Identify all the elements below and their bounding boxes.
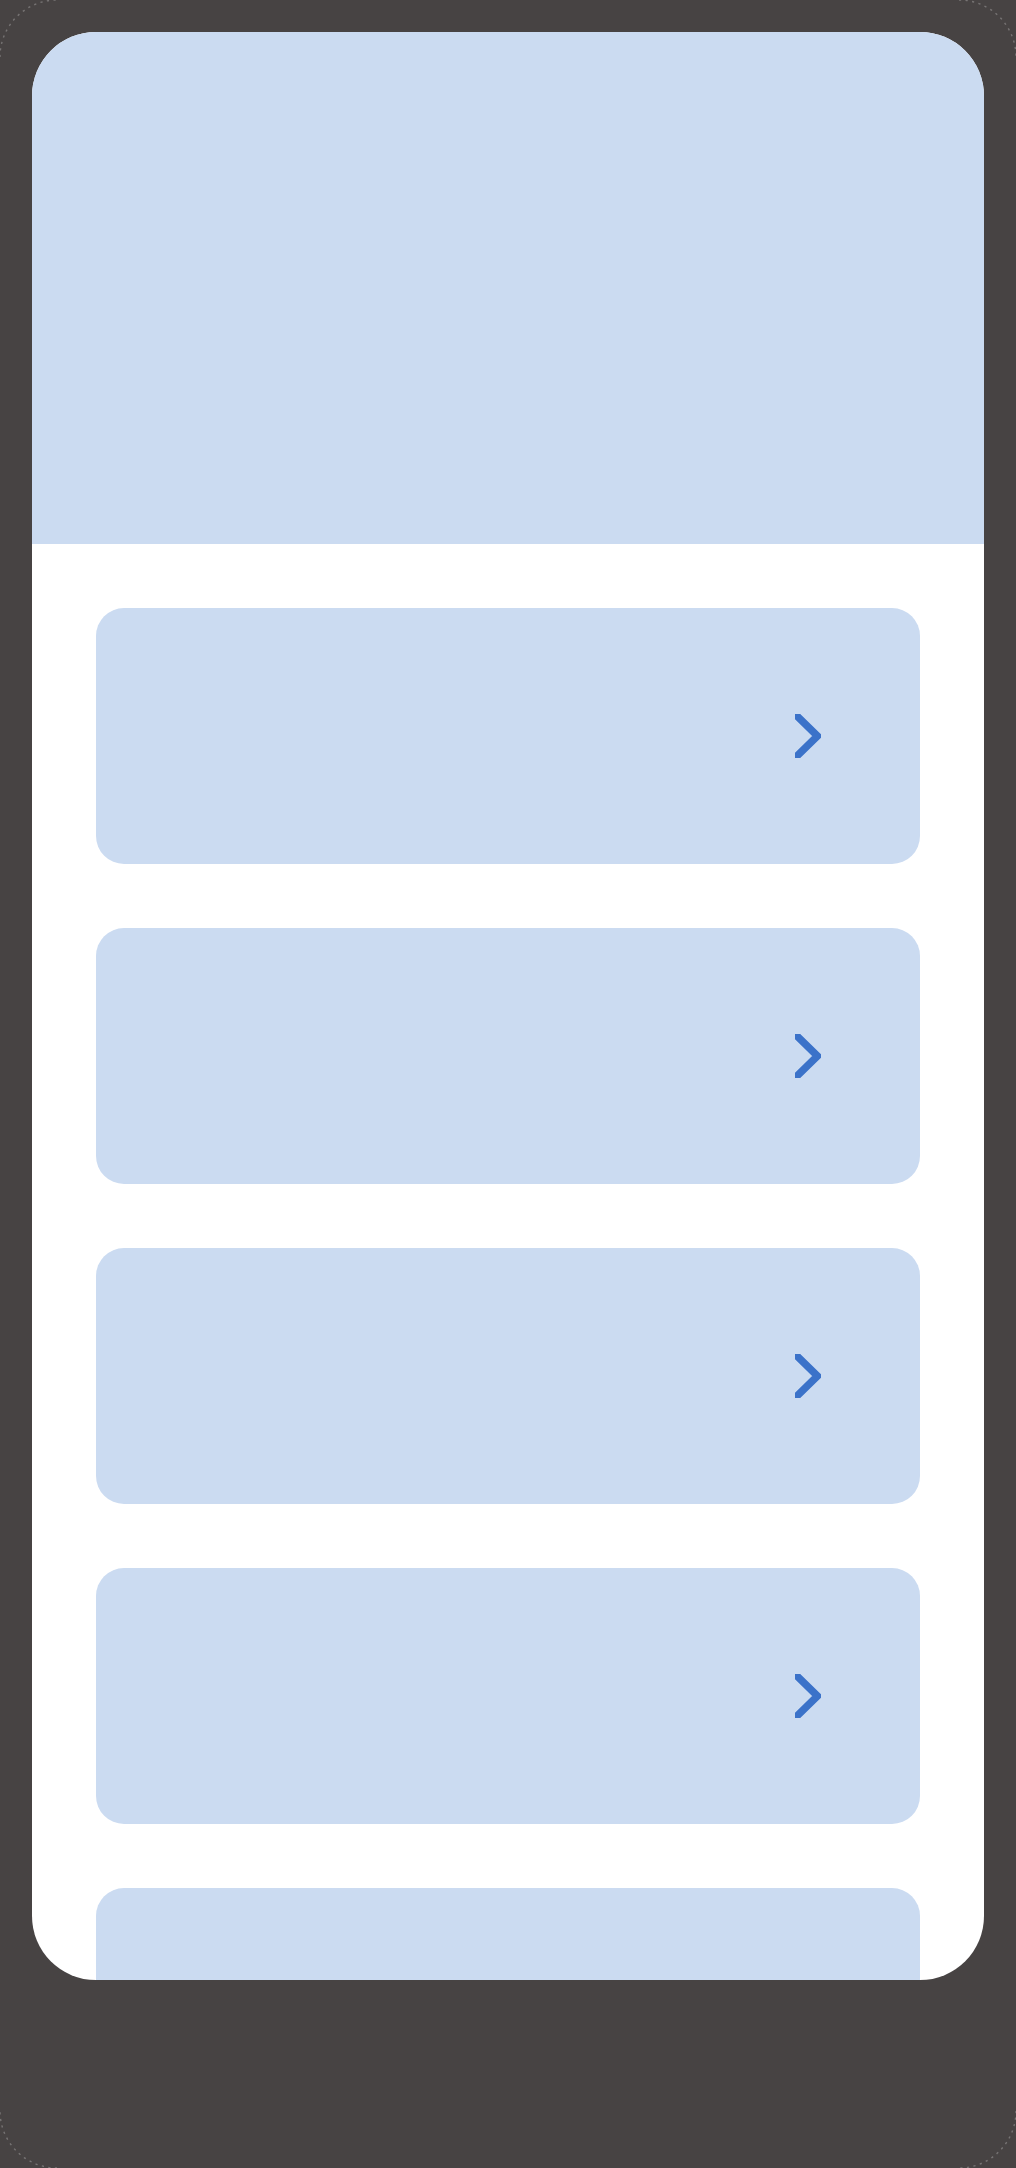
button[interactable]: Open item 4 xyxy=(96,1568,920,1824)
button[interactable]: Open item 1 xyxy=(96,608,920,864)
button[interactable]: Open item 3 xyxy=(96,1248,920,1504)
button[interactable]: Open item 2 xyxy=(96,928,920,1184)
button[interactable]: Open item 5 xyxy=(96,1888,920,1980)
button[interactable]: Featured banner xyxy=(32,32,984,544)
